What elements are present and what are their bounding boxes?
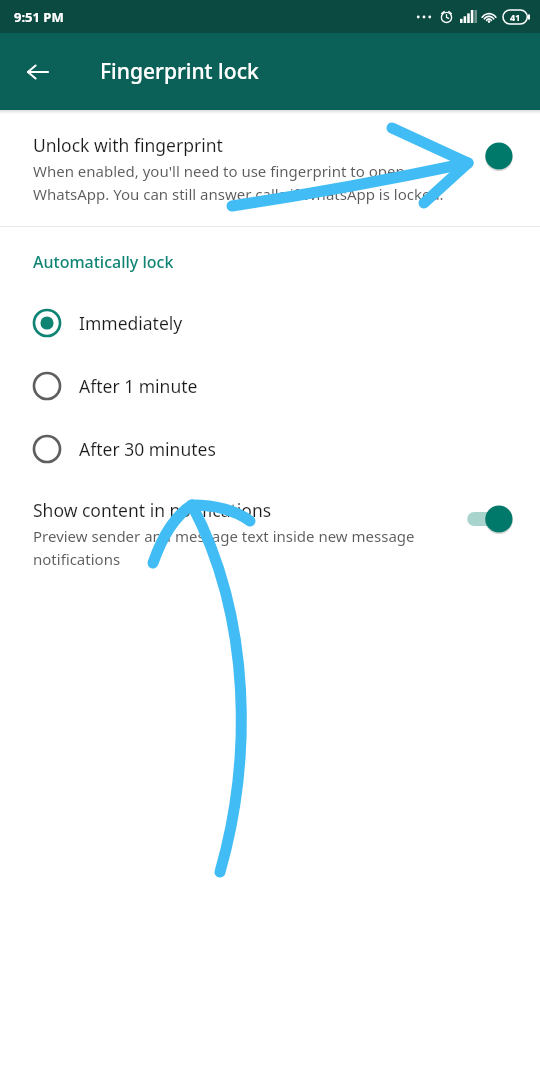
- button[interactable]: Toggle: [462, 502, 514, 536]
- staticText: After 30 minutes: [79, 437, 216, 461]
- button[interactable]: After 30 minutes: [0, 417, 540, 480]
- staticText: Show content in notifications: [33, 498, 272, 522]
- button[interactable]: Unlock with fingerprint: [0, 114, 540, 226]
- staticText: After 1 minute: [79, 374, 198, 398]
- button[interactable]: After 1 minute: [0, 354, 540, 417]
- staticText: Automatically lock: [33, 251, 174, 273]
- button[interactable]: Show content in notifications: [0, 494, 540, 585]
- staticText: When enabled, you'll need to use fingerp…: [33, 161, 454, 204]
- button[interactable]: Immediately: [0, 291, 540, 354]
- button[interactable]: Back: [14, 48, 62, 96]
- staticText: 41: [510, 11, 521, 23]
- button[interactable]: Toggle: [462, 139, 514, 173]
- staticText: Unlock with fingerprint: [33, 133, 223, 157]
- staticText: Immediately: [79, 311, 183, 335]
- staticText: Fingerprint lock: [100, 57, 259, 86]
- staticText: 9:51 PM: [14, 8, 64, 26]
- staticText: Preview sender and message text inside n…: [33, 526, 454, 569]
